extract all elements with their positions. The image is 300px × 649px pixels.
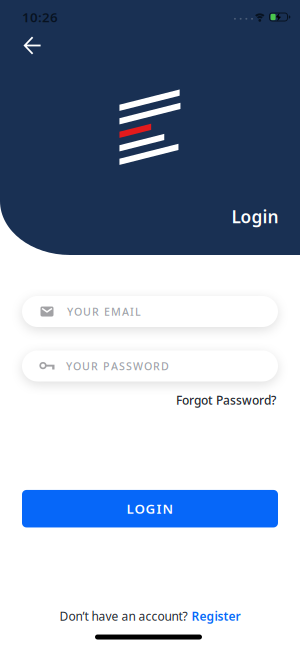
staticText: Y O U R E M A I L bbox=[67, 304, 141, 319]
button[interactable]: Back bbox=[12, 23, 53, 68]
button[interactable]: Forgot Password? bbox=[126, 393, 276, 407]
staticText: Don’t have an account? bbox=[59, 608, 187, 624]
staticText: Y O U R P A S S W O R D bbox=[66, 359, 169, 373]
staticText: Register bbox=[191, 608, 240, 624]
button[interactable]: Y O U R P A S S W O R D bbox=[22, 350, 278, 381]
staticText: Forgot Password? bbox=[176, 392, 276, 408]
staticText: L O G I N bbox=[126, 500, 173, 517]
button[interactable]: Y O U R E M A I L bbox=[22, 296, 278, 327]
button[interactable]: L O G I N bbox=[22, 490, 278, 527]
staticText: 10:26 bbox=[22, 8, 58, 26]
staticText: Login bbox=[231, 205, 278, 228]
button[interactable]: Register bbox=[191, 608, 240, 624]
